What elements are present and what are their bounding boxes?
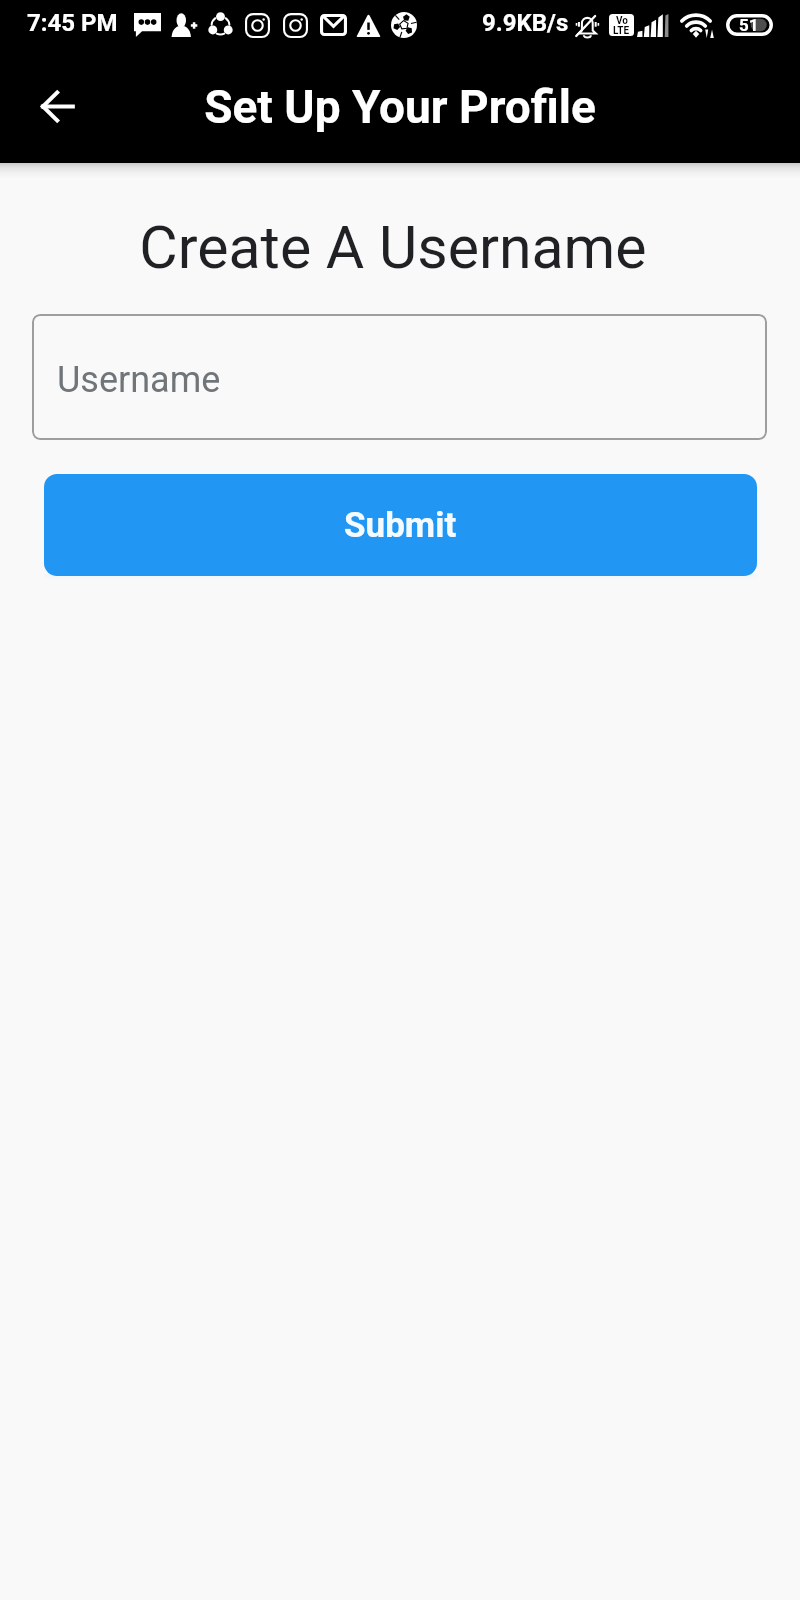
button[interactable]: Submit	[44, 474, 757, 576]
staticText: Username	[57, 359, 221, 401]
staticText: 7:45 PM	[27, 9, 118, 37]
staticText: Set Up Your Profile	[0, 80, 800, 134]
staticText: LTE	[613, 25, 630, 35]
button[interactable]: Username	[32, 314, 767, 440]
staticText: 9.9KB/s	[482, 9, 569, 37]
staticText: Submit	[344, 505, 457, 546]
button[interactable]: Back	[17, 66, 97, 146]
staticText: Vo	[616, 15, 628, 27]
staticText: Create A Username	[0, 213, 793, 282]
staticText: 51	[739, 15, 759, 35]
